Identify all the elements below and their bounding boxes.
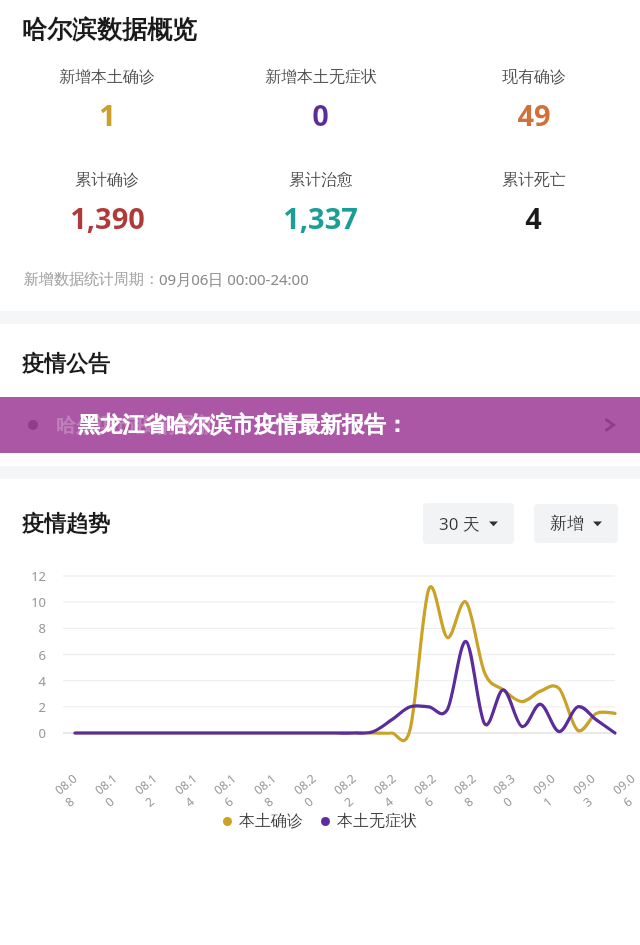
staticText: 08.12 xyxy=(131,766,175,810)
button[interactable]: 本土无症状 xyxy=(321,811,417,831)
staticText: 1,337 xyxy=(283,198,358,237)
staticText: 08.26 xyxy=(410,766,454,810)
staticText: 0 xyxy=(0,724,46,742)
staticText: 30 天 xyxy=(439,512,480,535)
staticText: 08.08 xyxy=(51,766,95,810)
staticText: 2 xyxy=(0,698,46,716)
staticText: 08.24 xyxy=(370,766,414,810)
staticText: 累计死亡 xyxy=(502,170,566,190)
staticText: 4 xyxy=(525,198,542,237)
staticText: 新增 xyxy=(550,513,584,534)
staticText: 0 xyxy=(312,95,329,134)
staticText: 疫情趋势 xyxy=(22,510,110,538)
staticText: 08.28 xyxy=(450,766,494,810)
staticText: 08.14 xyxy=(171,766,215,810)
staticText: 08.20 xyxy=(290,766,334,810)
staticText: 疫情公告 xyxy=(22,350,110,378)
staticText: 8 xyxy=(0,619,46,637)
staticText: 哈尔滨市疫情最新 xyxy=(56,413,216,438)
button[interactable]: 本土确诊 xyxy=(223,811,303,831)
staticText: 新增本土确诊 xyxy=(59,67,155,87)
staticText: 08.16 xyxy=(210,766,254,810)
staticText: 本土确诊 xyxy=(239,811,303,831)
button[interactable]: 新增 xyxy=(534,504,618,543)
staticText: 哈尔滨数据概览 xyxy=(22,14,197,45)
staticText: 6 xyxy=(0,646,46,664)
staticText: 49 xyxy=(517,95,551,134)
staticText: 08.22 xyxy=(330,766,374,810)
staticText: 新增数据统计周期： xyxy=(24,270,159,289)
other: More xyxy=(602,417,618,433)
staticText: 12 xyxy=(0,567,46,585)
staticText: 1 xyxy=(99,95,116,134)
staticText: 09月06日 00:00-24:00 xyxy=(159,269,309,289)
staticText: 本土无症状 xyxy=(337,811,417,831)
staticText: 累计确诊 xyxy=(75,170,139,190)
staticText: 09.06 xyxy=(609,766,640,810)
button[interactable]: 30 天 xyxy=(423,503,514,544)
staticText: 08.10 xyxy=(91,766,135,810)
staticText: 09.01 xyxy=(529,766,573,810)
staticText: 4 xyxy=(0,672,46,690)
staticText: 累计治愈 xyxy=(289,170,353,190)
staticText: 新增本土无症状 xyxy=(265,67,377,87)
staticText: 09.03 xyxy=(569,766,613,810)
staticText: 10 xyxy=(0,593,46,611)
staticText: 1,390 xyxy=(70,198,145,237)
staticText: 08.30 xyxy=(489,766,533,810)
staticText: 现有确诊 xyxy=(502,67,566,87)
staticText: 黑龙江省哈尔滨市疫情最新报告： xyxy=(78,411,408,439)
button[interactable]: 哈尔滨市疫情最新 xyxy=(0,397,640,453)
staticText: 08.18 xyxy=(250,766,294,810)
